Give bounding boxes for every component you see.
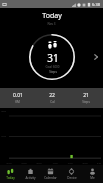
button[interactable]: Device [61,165,82,183]
button[interactable]: Next day [89,50,103,64]
staticText: Goal 6000 [45,65,60,69]
staticText: 08:00 [36,162,42,165]
button[interactable]: 21 [69,88,103,108]
button[interactable]: 22 [35,88,69,108]
button[interactable]: Step goal progress [28,33,76,81]
staticText: 16:00 [67,162,73,165]
staticText: 0.01 [13,92,23,99]
staticText: 6:38 [92,2,100,7]
staticText: 20:00 [82,162,88,165]
staticText: Me [90,176,95,180]
staticText: 04:00 [21,162,27,165]
staticText: Cal [50,100,55,104]
button[interactable]: Me [82,165,103,183]
button[interactable]: 0.01 [0,88,35,108]
button[interactable]: Calendar [40,165,61,183]
staticText: 00:00 [6,162,12,165]
staticText: Calendar [44,176,57,180]
staticText: KM [15,100,20,104]
staticText: Nov 3 [47,22,56,26]
staticText: Steps [82,100,90,104]
staticText: 12:00 [52,162,58,165]
staticText: Steps [49,70,57,74]
staticText: Device [67,176,77,180]
staticText: Activity [25,176,36,180]
button[interactable]: Today [0,165,20,183]
staticText: 21 [83,92,89,99]
button[interactable]: 3000 [0,108,103,165]
staticText: 22 [49,92,55,99]
staticText: 3000 [1,110,6,113]
staticText: 1500 [1,135,6,138]
button[interactable]: Activity [20,165,40,183]
staticText: Today [42,11,62,21]
staticText: Today [6,176,15,180]
staticText: 0:00 [97,162,101,165]
staticText: 31 [47,51,59,65]
